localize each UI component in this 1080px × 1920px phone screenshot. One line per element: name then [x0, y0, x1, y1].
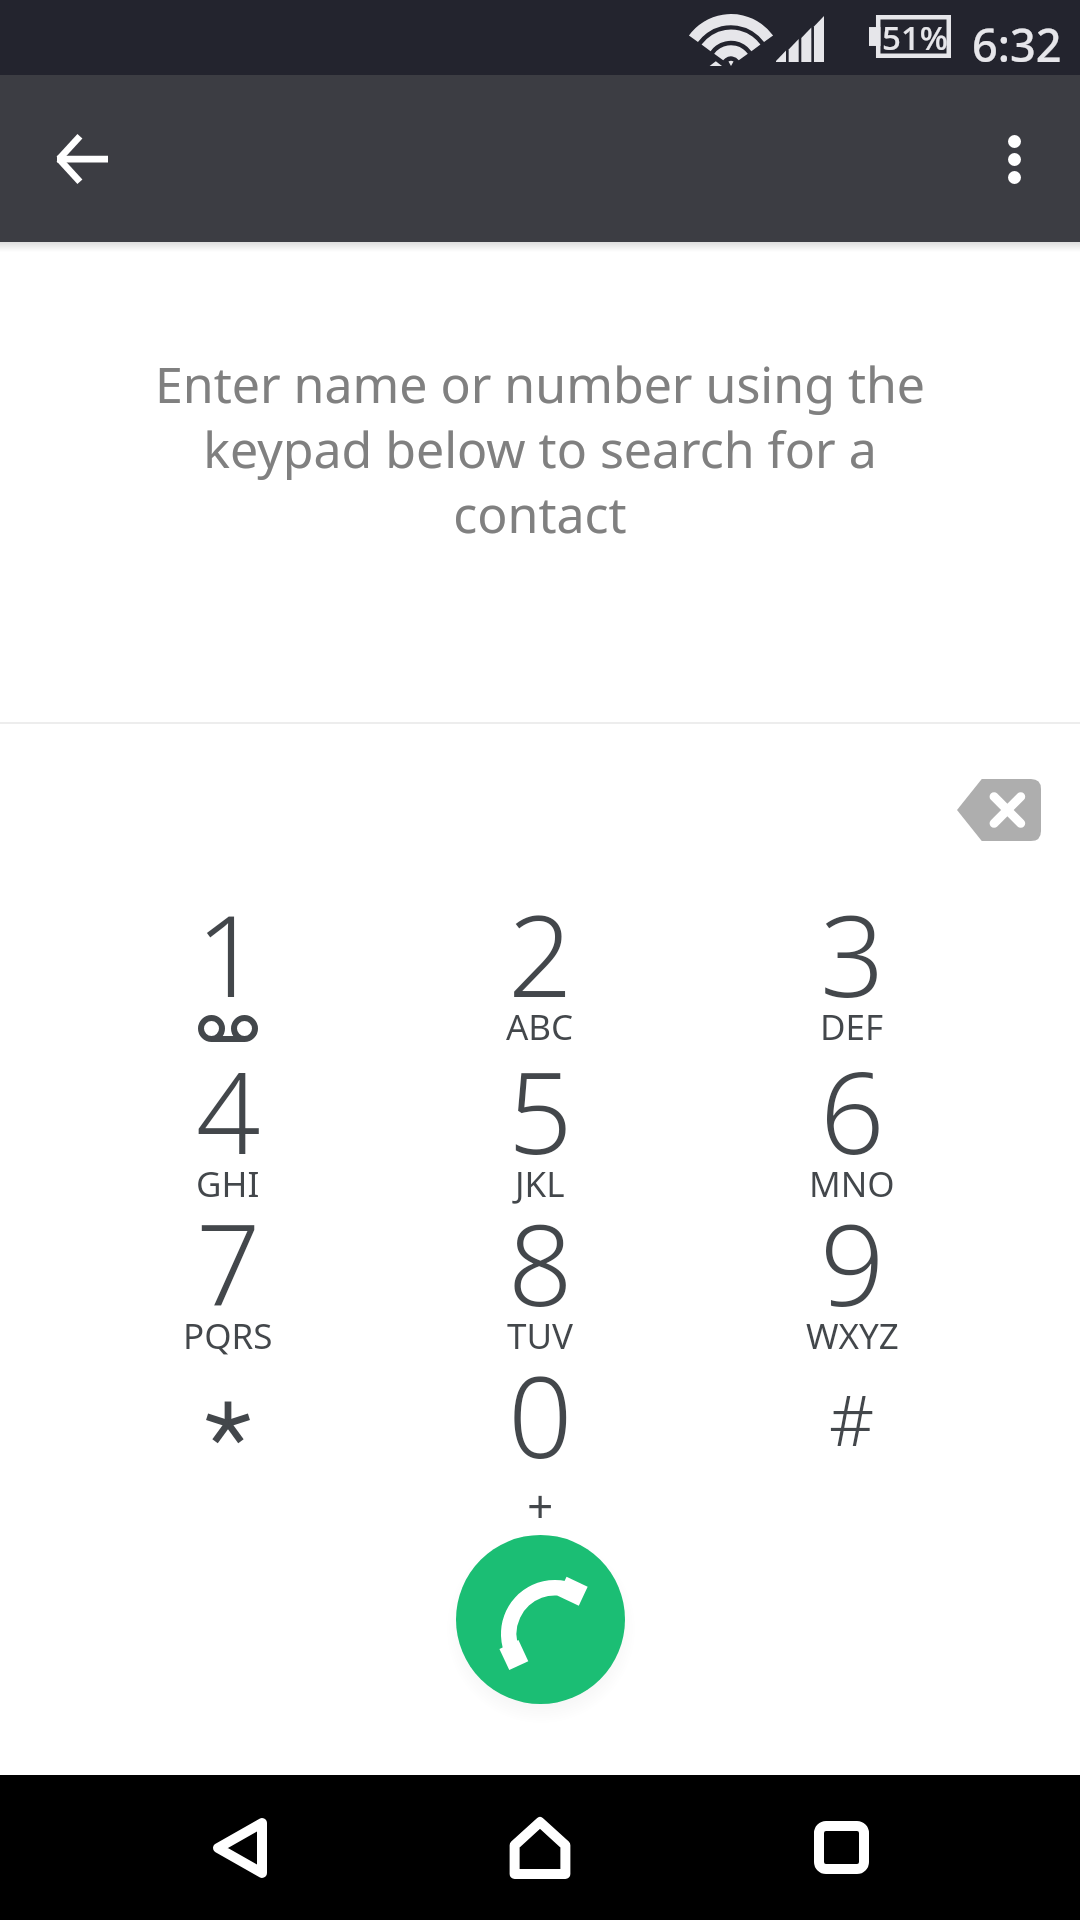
staticText: 7 — [196, 1185, 261, 1337]
button[interactable]: Dial 9 — [692, 1185, 1012, 1337]
staticText: DEF — [820, 1003, 884, 1051]
staticText: 51% — [882, 15, 948, 58]
staticText: 2 — [508, 876, 573, 1028]
staticText: 8 — [508, 1185, 573, 1337]
staticText: 3 — [820, 876, 885, 1028]
button[interactable]: Dial * — [68, 1337, 388, 1489]
button[interactable]: Dial 6 — [692, 1033, 1012, 1185]
button[interactable]: Dial # — [692, 1337, 1012, 1489]
other: Wi-Fi — [700, 14, 762, 66]
staticText: MNO — [809, 1160, 895, 1208]
staticText: TUV — [507, 1312, 574, 1360]
button[interactable]: Back — [192, 1775, 288, 1920]
button[interactable]: Call — [456, 1535, 625, 1704]
button[interactable]: Dial 7 — [68, 1185, 388, 1337]
staticText: 9 — [820, 1185, 885, 1337]
button[interactable]: Back — [34, 111, 130, 207]
button[interactable]: More options — [966, 111, 1062, 207]
button[interactable]: Home — [492, 1775, 588, 1920]
staticText: # — [829, 1371, 875, 1466]
staticText: PQRS — [183, 1312, 273, 1360]
button[interactable]: Dial 2 — [380, 876, 700, 1028]
button[interactable]: Dial 3 — [692, 876, 1012, 1028]
staticText: 4 — [196, 1033, 261, 1185]
staticText: ABC — [506, 1003, 574, 1051]
staticText: 1 — [196, 876, 261, 1028]
staticText: 5 — [508, 1033, 573, 1185]
button[interactable]: Recents — [793, 1775, 889, 1920]
staticText: WXYZ — [806, 1312, 899, 1360]
button[interactable]: Backspace — [957, 779, 1041, 841]
button[interactable]: Dial 8 — [380, 1185, 700, 1337]
button[interactable]: Dial 5 — [380, 1033, 700, 1185]
staticText: GHI — [196, 1160, 260, 1208]
staticText: 6 — [820, 1033, 885, 1185]
staticText: Enter name or number using the keypad be… — [140, 350, 940, 548]
staticText: JKL — [515, 1160, 565, 1208]
button[interactable]: Dial 1 — [68, 876, 388, 1028]
staticText: 0 — [508, 1337, 573, 1489]
staticText: 6:32 — [972, 14, 1062, 75]
staticText: + — [527, 1474, 554, 1537]
button[interactable]: Dial 0 — [380, 1337, 700, 1489]
button[interactable]: Dial 4 — [68, 1033, 388, 1185]
